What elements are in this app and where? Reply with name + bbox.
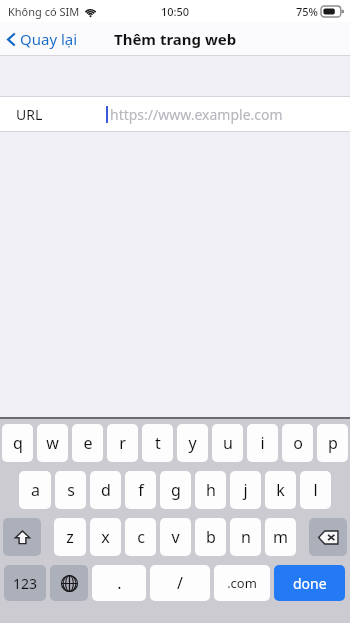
staticText: h — [206, 479, 216, 501]
staticText: t — [155, 432, 161, 454]
staticText: v — [171, 526, 180, 548]
button[interactable]: z — [54, 518, 86, 556]
staticText: g — [171, 479, 181, 501]
staticText: o — [293, 432, 303, 454]
staticText: r — [119, 432, 126, 454]
staticText: done — [293, 574, 327, 593]
button[interactable]: n — [230, 518, 261, 556]
staticText: c — [137, 526, 145, 548]
button[interactable]: j — [230, 471, 261, 509]
button[interactable]: s — [55, 471, 86, 509]
button[interactable]: x — [90, 518, 121, 556]
staticText: Thêm trang web — [114, 29, 237, 49]
button[interactable]: t — [142, 424, 173, 462]
staticText: z — [66, 526, 74, 548]
button[interactable]: r — [107, 424, 138, 462]
staticText: x — [101, 526, 110, 548]
staticText: y — [188, 432, 197, 454]
staticText: 75% — [296, 4, 318, 19]
staticText: f — [138, 479, 144, 501]
staticText: q — [13, 432, 23, 454]
staticText: . — [117, 572, 122, 594]
button[interactable]: b — [195, 518, 226, 556]
button[interactable]: g — [160, 471, 191, 509]
staticText: .com — [227, 574, 257, 592]
button[interactable]: a — [19, 471, 51, 509]
staticText: k — [276, 479, 285, 501]
staticText: i — [260, 432, 265, 454]
button[interactable]: u — [212, 424, 243, 462]
button[interactable]: w — [37, 424, 68, 462]
staticText: u — [223, 432, 233, 454]
button[interactable]: q — [2, 424, 33, 462]
staticText: d — [101, 479, 111, 501]
button[interactable]: / — [150, 565, 210, 601]
staticText: 123 — [13, 574, 38, 593]
button[interactable]: o — [282, 424, 313, 462]
button[interactable]: i — [247, 424, 278, 462]
button[interactable]: c — [125, 518, 156, 556]
staticText: Quay lại — [20, 29, 78, 49]
button[interactable]: URL — [0, 97, 350, 131]
staticText: e — [83, 432, 93, 454]
button[interactable]: done — [274, 565, 345, 601]
staticText: j — [243, 479, 248, 501]
staticText: https://www.example.com — [110, 105, 283, 124]
staticText: m — [273, 526, 288, 548]
button[interactable]: f — [125, 471, 156, 509]
staticText: URL — [16, 105, 43, 124]
staticText: p — [328, 432, 338, 454]
button[interactable]: e — [72, 424, 103, 462]
button[interactable]: . — [92, 565, 146, 601]
button[interactable]: v — [160, 518, 191, 556]
button[interactable]: m — [265, 518, 296, 556]
button[interactable]: h — [195, 471, 226, 509]
button[interactable]: p — [317, 424, 348, 462]
button[interactable]: Delete — [309, 518, 347, 556]
staticText: Không có SIM — [8, 4, 80, 19]
button[interactable]: Shift — [3, 518, 41, 556]
staticText: w — [46, 432, 59, 454]
staticText: / — [177, 572, 183, 594]
staticText: l — [313, 479, 318, 501]
staticText: b — [206, 526, 216, 548]
staticText: a — [31, 479, 40, 501]
button[interactable]: .com — [214, 565, 270, 601]
button[interactable]: 123 — [4, 565, 46, 601]
staticText: 10:50 — [161, 4, 190, 19]
button[interactable]: Quay lại — [0, 24, 88, 54]
button[interactable]: k — [265, 471, 296, 509]
staticText: n — [241, 526, 251, 548]
button[interactable]: y — [177, 424, 208, 462]
button[interactable]: Change keyboard — [50, 565, 88, 601]
button[interactable]: l — [300, 471, 331, 509]
staticText: s — [67, 479, 75, 501]
button[interactable]: d — [90, 471, 121, 509]
